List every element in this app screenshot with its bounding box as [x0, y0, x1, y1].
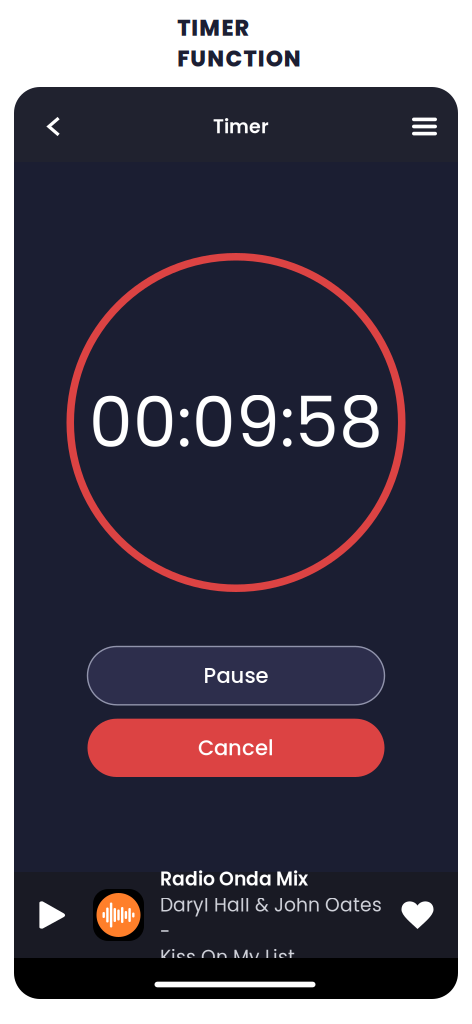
button[interactable]: Cancel: [87, 719, 384, 777]
button[interactable]: Pause: [87, 646, 384, 705]
staticText: 00:09:58: [89, 374, 383, 471]
staticText: Pause: [203, 661, 268, 690]
staticText: Cancel: [198, 733, 274, 763]
staticText: TIMER FUNCTION: [177, 13, 301, 74]
button[interactable]: Menu: [394, 91, 458, 157]
staticText: Kiss On My List: [160, 944, 295, 970]
staticText: Radio Onda Mix: [160, 866, 308, 892]
button[interactable]: Back: [14, 90, 79, 158]
staticText: Timer: [213, 113, 269, 140]
button[interactable]: Play: [31, 894, 73, 935]
button[interactable]: Favorite: [400, 895, 443, 935]
staticText: Daryl Hall & John Oates -: [160, 892, 382, 944]
